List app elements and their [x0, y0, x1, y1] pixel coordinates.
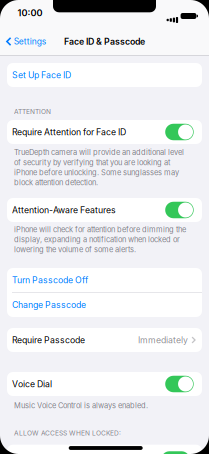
button[interactable]: Require Passcode [7, 328, 202, 352]
staticText: Face ID & Passcode [64, 36, 145, 47]
staticText: Music Voice Control is always enabled. [14, 401, 148, 410]
button[interactable]: Require Attention for Face ID [165, 124, 194, 140]
staticText: Settings [14, 36, 46, 47]
staticText: TrueDepth camera will provide an additio… [14, 148, 184, 187]
staticText: Voice Dial [12, 379, 52, 389]
staticText: ALLOW ACCESS WHEN LOCKED: [14, 429, 121, 437]
button[interactable]: Change Passcode [7, 293, 202, 317]
button[interactable]: Allow access when locked [161, 451, 190, 454]
staticText: Set Up Face ID [12, 70, 71, 80]
staticText: ATTENTION [14, 107, 51, 115]
button[interactable]: Set Up Face ID [7, 63, 202, 87]
staticText: iPhone will check for attention before d… [14, 225, 186, 254]
staticText: Require Attention for Face ID [12, 127, 126, 137]
staticText: Attention-Aware Features [12, 205, 116, 215]
staticText: Require Passcode [12, 335, 85, 345]
button[interactable]: Voice Dial [165, 376, 194, 392]
button[interactable]: Attention-Aware Features [165, 202, 194, 218]
staticText: Immediately [138, 335, 188, 345]
button[interactable]: Turn Passcode Off [7, 268, 202, 292]
button[interactable]: Settings [6, 31, 46, 51]
staticText: Turn Passcode Off [12, 275, 88, 285]
staticText: 10:00 [17, 7, 42, 18]
staticText: Change Passcode [12, 300, 86, 310]
